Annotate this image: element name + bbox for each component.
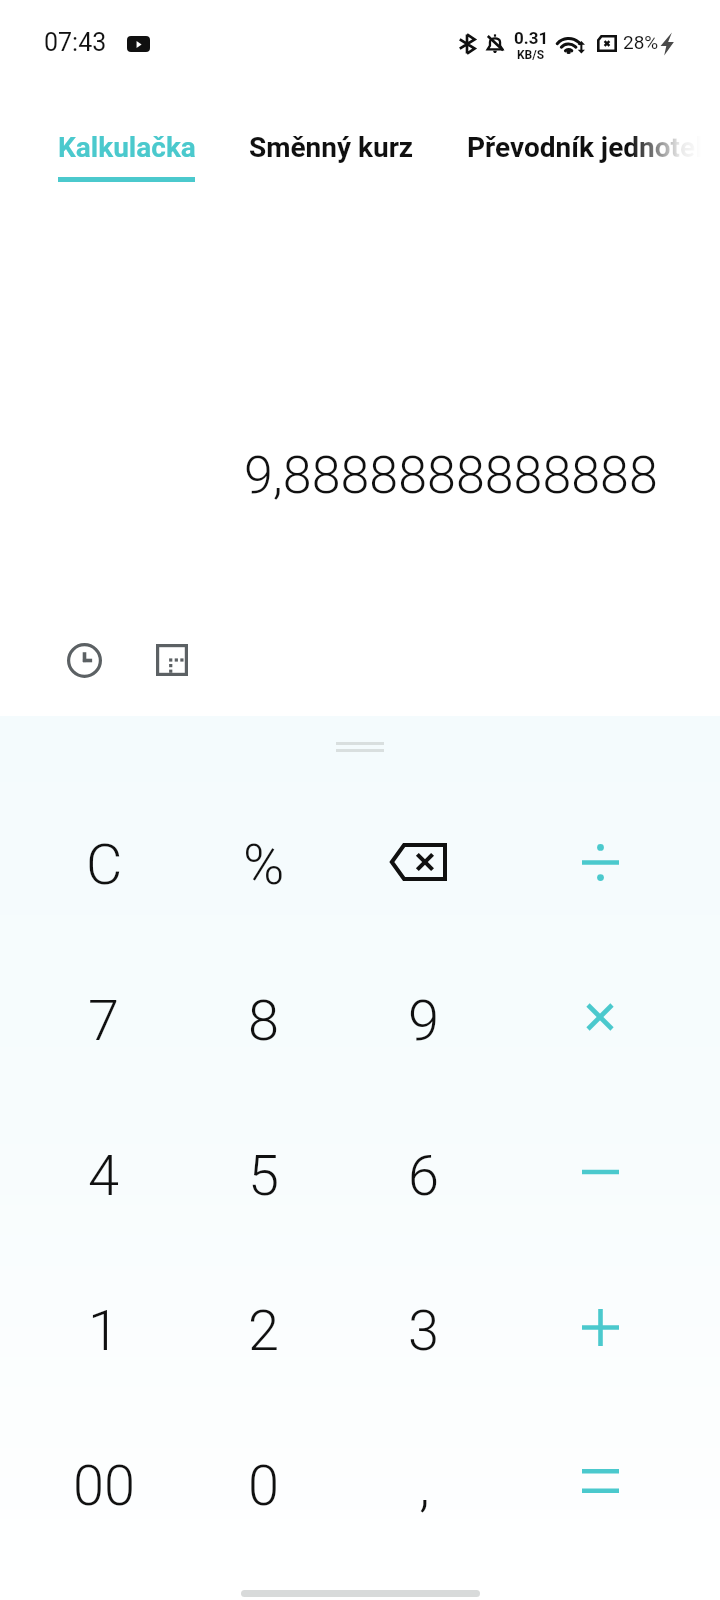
- button[interactable]: %: [186, 791, 342, 939]
- button[interactable]: 5: [186, 1102, 342, 1250]
- button[interactable]: Backspace: [346, 788, 502, 936]
- staticText: 1: [88, 1298, 120, 1364]
- staticText: 6: [408, 1143, 440, 1209]
- button[interactable]: 6: [346, 1102, 502, 1250]
- button[interactable]: 00: [26, 1412, 182, 1560]
- staticText: 2: [248, 1298, 280, 1364]
- button[interactable]: Kalkulačka: [58, 131, 196, 164]
- staticText: 9: [408, 988, 440, 1054]
- staticText: Kalkulačka: [58, 131, 196, 164]
- other: Add: [582, 1309, 619, 1346]
- button[interactable]: 9: [346, 947, 502, 1095]
- button[interactable]: Add: [522, 1253, 678, 1401]
- staticText: 00: [73, 1453, 136, 1519]
- button[interactable]: 0: [186, 1412, 342, 1560]
- button[interactable]: C: [26, 791, 182, 939]
- staticText: KB/S: [517, 48, 545, 62]
- staticText: ,: [419, 1453, 430, 1519]
- button[interactable]: Multiply: [522, 943, 678, 1091]
- button[interactable]: 1: [26, 1257, 182, 1405]
- other: Backspace: [389, 843, 447, 881]
- staticText: 9,8888888888888: [244, 445, 658, 506]
- staticText: 07:43: [44, 28, 107, 57]
- staticText: C: [86, 832, 123, 898]
- button[interactable]: 7: [26, 947, 182, 1095]
- staticText: 3: [408, 1298, 440, 1364]
- button[interactable]: Směnný kurz: [249, 131, 414, 164]
- staticText: 8: [248, 988, 280, 1054]
- staticText: 28%: [623, 31, 659, 53]
- button[interactable]: ,: [346, 1412, 502, 1560]
- staticText: 4: [88, 1143, 120, 1209]
- button[interactable]: History: [62, 638, 106, 682]
- other: Equals: [582, 1469, 619, 1493]
- staticText: Převodník jednotek: [467, 131, 711, 164]
- button[interactable]: Převodník jednotek: [467, 131, 711, 164]
- staticText: 7: [88, 988, 120, 1054]
- staticText: 0.31: [514, 28, 549, 48]
- button[interactable]: 8: [186, 947, 342, 1095]
- button[interactable]: 4: [26, 1102, 182, 1250]
- button[interactable]: 3: [346, 1257, 502, 1405]
- button[interactable]: Divide: [522, 788, 678, 936]
- staticText: Směnný kurz: [249, 131, 414, 164]
- button[interactable]: Subtract: [522, 1098, 678, 1246]
- other: Multiply: [586, 1003, 614, 1031]
- staticText: 5: [248, 1143, 280, 1209]
- staticText: 0: [248, 1453, 280, 1519]
- other: Subtract: [582, 1169, 619, 1175]
- other: Divide: [582, 844, 619, 881]
- button[interactable]: Resize: [150, 638, 194, 682]
- staticText: %: [243, 832, 285, 898]
- button[interactable]: Equals: [522, 1407, 678, 1555]
- button[interactable]: 2: [186, 1257, 342, 1405]
